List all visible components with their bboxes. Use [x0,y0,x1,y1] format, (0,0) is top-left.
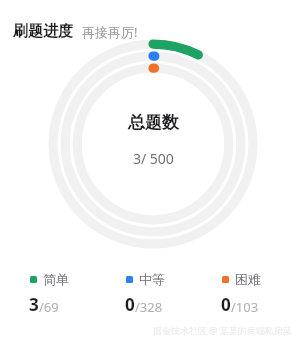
button[interactable]: Question progress rings [48,39,258,249]
button[interactable]: 中等 [114,271,192,316]
staticText: 简单 [43,271,69,287]
staticText: 再接再厉! [82,23,138,41]
staticText: /69 [39,298,59,316]
staticText: 0 [125,293,135,316]
staticText: 3 [29,293,39,316]
button[interactable]: 简单 [18,271,96,316]
staticText: /328 [135,298,163,316]
staticText: /103 [231,298,259,316]
staticText: 困难 [235,271,261,287]
staticText: 刷题进度 [13,22,73,41]
staticText: 中等 [139,271,165,287]
button[interactable]: 困难 [210,271,288,316]
staticText: 3/ 500 [133,149,174,168]
staticText: 掘金技术社区 @ 某某的后端私房菜 [153,324,292,336]
staticText: 0 [221,293,231,316]
staticText: 总题数 [128,112,179,133]
